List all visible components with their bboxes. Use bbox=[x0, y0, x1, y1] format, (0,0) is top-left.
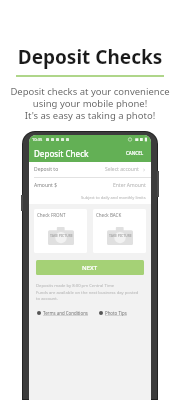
button[interactable]: Deposit to bbox=[29, 162, 151, 177]
staticText: Check FRONT bbox=[37, 212, 66, 218]
staticText: Check BACK bbox=[96, 212, 122, 218]
staticText: NEXT bbox=[82, 264, 98, 272]
staticText: Deposit to bbox=[34, 166, 59, 173]
button[interactable]: Check BACK bbox=[93, 209, 146, 253]
staticText: Select account bbox=[105, 166, 139, 173]
staticText: Deposit checks at your convenience using… bbox=[6, 85, 174, 122]
staticText: 10:35 bbox=[32, 137, 43, 142]
button[interactable]: CANCEL bbox=[124, 148, 146, 158]
other: Take picture bbox=[107, 226, 133, 245]
button[interactable]: NEXT bbox=[36, 260, 144, 275]
staticText: TAKE PICTURE bbox=[109, 233, 132, 238]
staticText: CANCEL bbox=[126, 150, 144, 156]
staticText: Photo Tips bbox=[105, 310, 127, 316]
other: Take picture bbox=[48, 226, 74, 245]
button[interactable]: Photo Tips bbox=[99, 309, 127, 317]
staticText: TAKE PICTURE bbox=[50, 233, 73, 238]
staticText: Enter Amount bbox=[113, 182, 146, 189]
staticText: Amount $ bbox=[34, 182, 58, 189]
staticText: Terms and Conditions bbox=[43, 310, 88, 316]
staticText: Subject to daily and monthly limits bbox=[81, 195, 146, 200]
button[interactable]: Terms and Conditions bbox=[37, 309, 88, 317]
button[interactable]: Check FRONT bbox=[34, 209, 87, 253]
staticText: Deposits made by 8:00 pm Central Time Fu… bbox=[36, 283, 144, 301]
button[interactable]: Amount $ bbox=[29, 178, 151, 193]
staticText: Deposit Checks bbox=[0, 44, 180, 70]
staticText: Deposit Check bbox=[34, 148, 89, 159]
